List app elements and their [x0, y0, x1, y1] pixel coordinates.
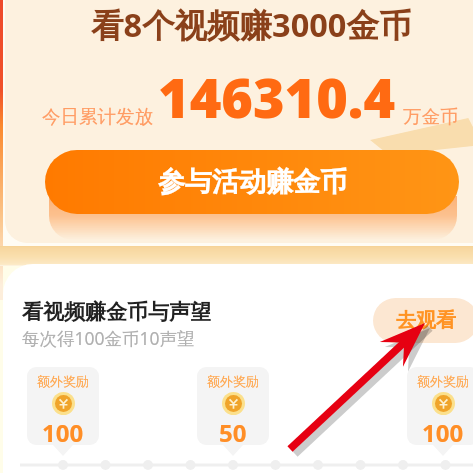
button[interactable]: 额外奖励: [407, 367, 473, 445]
staticText: 额外奖励: [37, 373, 89, 389]
staticText: 146310.4: [158, 60, 396, 134]
staticText: 去观看: [396, 308, 456, 333]
staticText: 100: [42, 416, 84, 445]
staticText: 额外奖励: [207, 373, 259, 389]
staticText: 每次得100金币10声望: [22, 326, 195, 350]
button[interactable]: 参与活动赚金币: [45, 150, 459, 214]
button[interactable]: 额外奖励: [27, 367, 99, 445]
staticText: 额外奖励: [417, 373, 469, 389]
staticText: 万金币: [403, 105, 459, 128]
staticText: 50: [219, 416, 247, 445]
staticText: 看视频赚金币与声望: [22, 299, 211, 325]
button[interactable]: 去观看: [373, 298, 473, 343]
button[interactable]: 额外奖励: [197, 367, 269, 445]
staticText: 看8个视频赚3000金币: [91, 2, 412, 46]
staticText: 今日累计发放: [42, 105, 153, 128]
staticText: 参与活动赚金币: [158, 165, 347, 199]
staticText: 100: [422, 416, 464, 445]
